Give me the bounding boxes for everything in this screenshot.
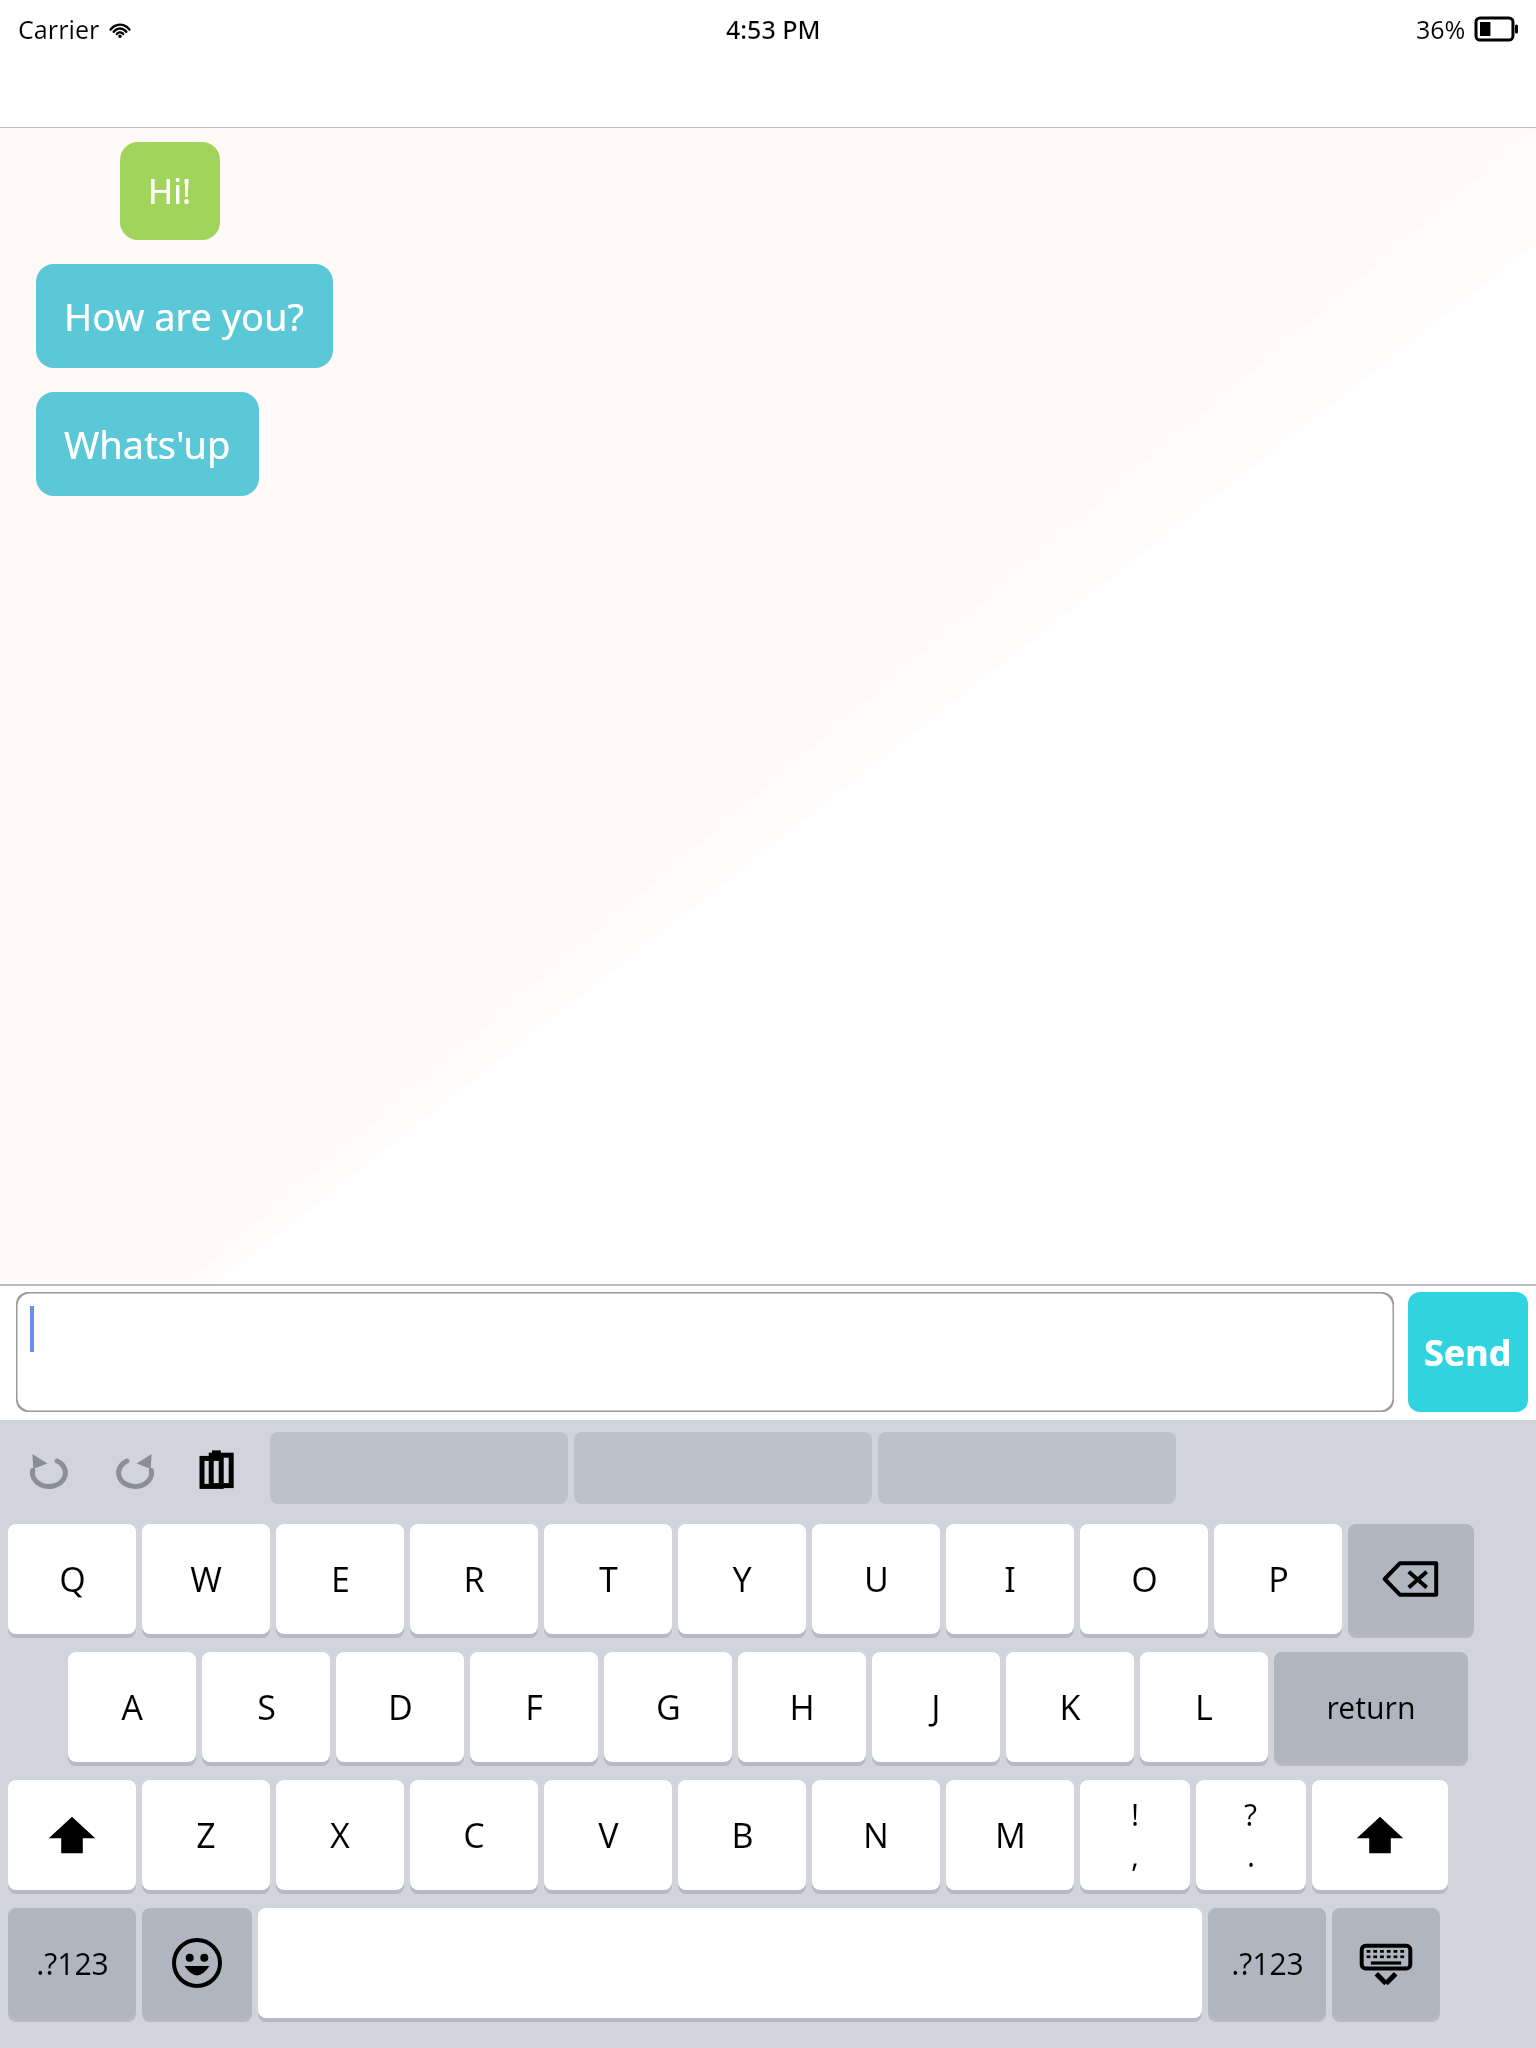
- button[interactable]: I: [946, 1524, 1074, 1636]
- staticText: E: [331, 1556, 350, 1602]
- button[interactable]: Backspace: [1348, 1524, 1474, 1636]
- staticText: V: [598, 1812, 619, 1858]
- button[interactable]: R: [410, 1524, 538, 1636]
- button[interactable]: Shift: [1312, 1780, 1448, 1892]
- staticText: .: [1247, 1835, 1256, 1876]
- button[interactable]: L: [1140, 1652, 1268, 1764]
- staticText: return: [1326, 1687, 1416, 1728]
- button[interactable]: M: [946, 1780, 1074, 1892]
- button[interactable]: W: [142, 1524, 270, 1636]
- button[interactable]: E: [276, 1524, 404, 1636]
- staticText: M: [995, 1812, 1026, 1858]
- staticText: X: [330, 1812, 350, 1858]
- staticText: Q: [59, 1556, 86, 1602]
- button[interactable]: .?123: [1208, 1908, 1326, 2020]
- button[interactable]: N: [812, 1780, 940, 1892]
- button[interactable]: Send: [1408, 1292, 1528, 1412]
- button[interactable]: !: [1080, 1780, 1190, 1892]
- button[interactable]: D: [336, 1652, 464, 1764]
- button[interactable]: O: [1080, 1524, 1208, 1636]
- staticText: L: [1195, 1684, 1213, 1730]
- staticText: !: [1131, 1794, 1140, 1835]
- button[interactable]: K: [1006, 1652, 1134, 1764]
- staticText: G: [656, 1684, 681, 1730]
- staticText: ?: [1244, 1794, 1258, 1835]
- button[interactable]: C: [410, 1780, 538, 1892]
- button[interactable]: T: [544, 1524, 672, 1636]
- staticText: C: [463, 1812, 485, 1858]
- button[interactable]: Y: [678, 1524, 806, 1636]
- button[interactable]: F: [470, 1652, 598, 1764]
- button[interactable]: return: [1274, 1652, 1468, 1764]
- staticText: T: [599, 1556, 618, 1602]
- button[interactable]: H: [738, 1652, 866, 1764]
- button[interactable]: How are you?: [36, 264, 333, 368]
- button[interactable]: X: [276, 1780, 404, 1892]
- button[interactable]: Shift: [8, 1780, 136, 1892]
- button[interactable]: Space: [258, 1908, 1202, 2020]
- button[interactable]: [16, 1292, 1394, 1412]
- button[interactable]: G: [604, 1652, 732, 1764]
- staticText: Send: [1424, 1328, 1512, 1377]
- staticText: Hi!: [148, 168, 192, 214]
- button[interactable]: .?123: [8, 1908, 136, 2020]
- button[interactable]: A: [68, 1652, 196, 1764]
- staticText: W: [190, 1556, 222, 1602]
- staticText: N: [863, 1812, 889, 1858]
- staticText: Carrier: [18, 12, 100, 46]
- button[interactable]: Whats'up: [36, 392, 259, 496]
- staticText: Whats'up: [64, 418, 231, 470]
- staticText: 4:53 PM: [726, 12, 821, 46]
- staticText: S: [257, 1684, 276, 1730]
- button[interactable]: P: [1214, 1524, 1342, 1636]
- button[interactable]: Paste: [188, 1436, 252, 1500]
- staticText: R: [463, 1556, 485, 1602]
- button[interactable]: Q: [8, 1524, 136, 1636]
- staticText: O: [1131, 1556, 1158, 1602]
- staticText: U: [864, 1556, 889, 1602]
- staticText: 36%: [1416, 12, 1466, 46]
- button[interactable]: Hide keyboard: [1332, 1908, 1440, 2020]
- staticText: .?123: [36, 1943, 109, 1984]
- staticText: ,: [1131, 1835, 1140, 1876]
- staticText: .?123: [1231, 1943, 1304, 1984]
- button[interactable]: Emoji: [142, 1908, 252, 2020]
- staticText: B: [731, 1812, 754, 1858]
- button[interactable]: ?: [1196, 1780, 1306, 1892]
- staticText: F: [525, 1684, 543, 1730]
- staticText: Y: [732, 1556, 752, 1602]
- staticText: K: [1059, 1684, 1081, 1730]
- button[interactable]: V: [544, 1780, 672, 1892]
- button[interactable]: Undo: [18, 1436, 82, 1500]
- staticText: A: [121, 1684, 143, 1730]
- staticText: Z: [196, 1812, 216, 1858]
- button[interactable]: B: [678, 1780, 806, 1892]
- staticText: P: [1268, 1556, 1289, 1602]
- button[interactable]: U: [812, 1524, 940, 1636]
- button[interactable]: Redo: [102, 1436, 166, 1500]
- button[interactable]: Hi!: [120, 142, 220, 240]
- staticText: J: [931, 1684, 941, 1730]
- staticText: D: [388, 1684, 413, 1730]
- staticText: I: [1004, 1556, 1016, 1602]
- button[interactable]: S: [202, 1652, 330, 1764]
- staticText: H: [789, 1684, 815, 1730]
- button[interactable]: J: [872, 1652, 1000, 1764]
- button[interactable]: Z: [142, 1780, 270, 1892]
- staticText: How are you?: [64, 290, 305, 342]
